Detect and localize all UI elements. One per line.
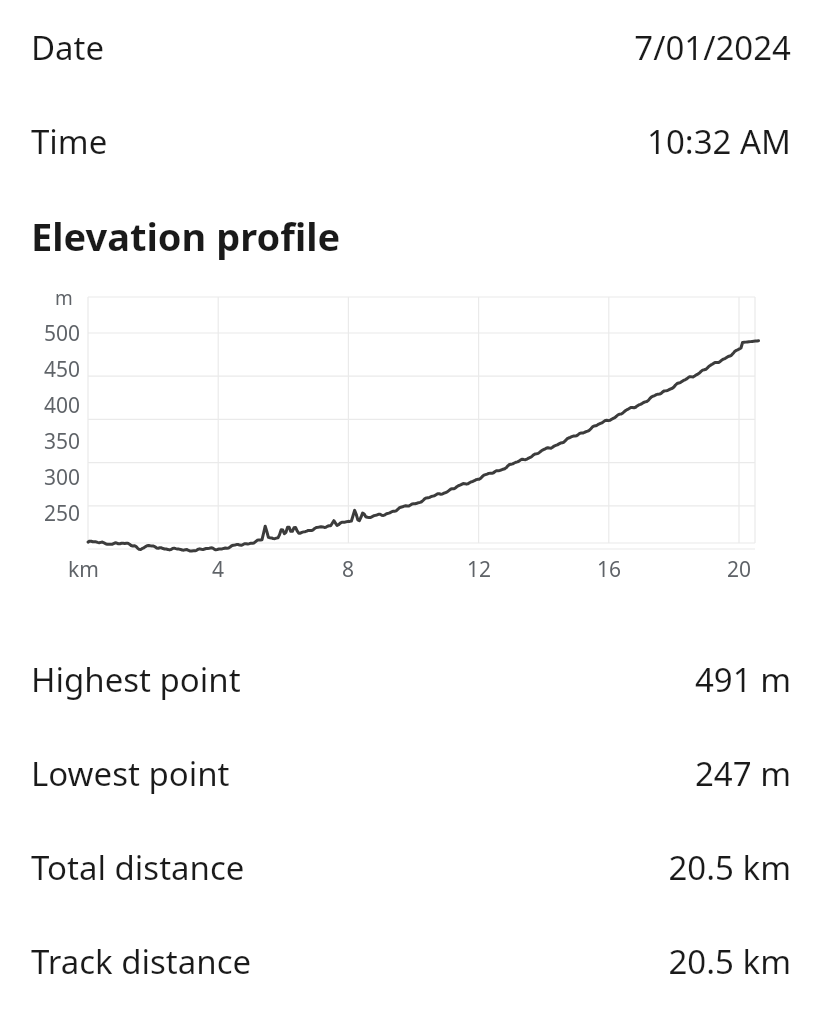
button[interactable]: Total distance	[0, 820, 823, 914]
staticText: 491 m	[694, 657, 791, 702]
button[interactable]: Highest point	[0, 632, 823, 726]
staticText: Date	[31, 25, 105, 70]
staticText: Highest point	[31, 657, 241, 702]
staticText: Time	[31, 119, 108, 164]
staticText: 350	[28, 427, 80, 456]
staticText: 400	[28, 391, 80, 420]
staticText: Lowest point	[31, 751, 230, 796]
staticText: 12	[449, 555, 509, 584]
staticText: Total distance	[31, 845, 245, 890]
button[interactable]: Time	[0, 94, 823, 188]
button[interactable]: Lowest point	[0, 726, 823, 820]
button[interactable]: Track distance	[0, 914, 823, 1008]
staticText: 20.5 km	[668, 939, 791, 984]
staticText: 16	[579, 555, 639, 584]
staticText: Elevation profile	[31, 210, 341, 262]
staticText: 8	[318, 555, 378, 584]
staticText: m	[55, 285, 73, 311]
staticText: 10:32 AM	[647, 119, 791, 164]
staticText: 7/01/2024	[634, 25, 791, 70]
staticText: 20.5 km	[668, 845, 791, 890]
staticText: Track distance	[31, 939, 252, 984]
staticText: km	[68, 555, 99, 584]
button[interactable]: Date	[0, 0, 823, 94]
staticText: 300	[28, 463, 80, 492]
staticText: 250	[28, 499, 80, 528]
staticText: 4	[188, 555, 248, 584]
staticText: 450	[28, 355, 80, 384]
staticText: 247 m	[694, 751, 791, 796]
staticText: 500	[28, 319, 80, 348]
staticText: 20	[709, 555, 769, 584]
